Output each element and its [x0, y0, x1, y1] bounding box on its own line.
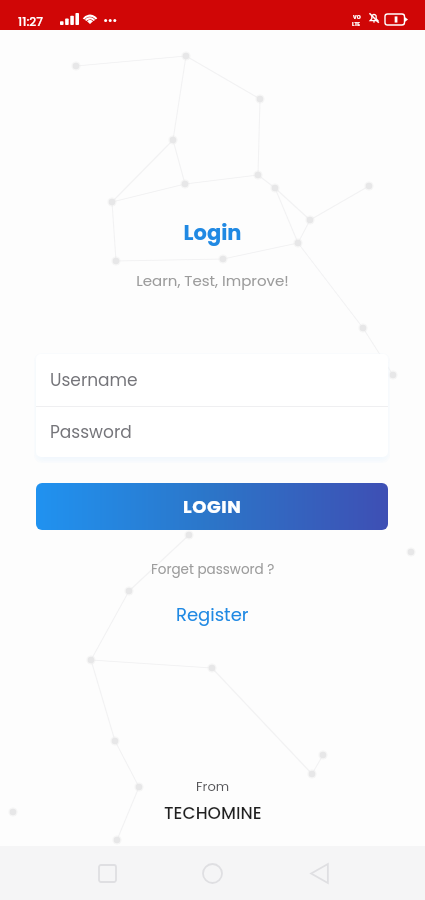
- button[interactable]: LOGIN: [36, 483, 388, 530]
- button[interactable]: Back: [295, 846, 344, 900]
- staticText: LOGIN: [183, 494, 242, 519]
- staticText: Learn, Test, Improve!: [136, 270, 289, 291]
- staticText: VO: [353, 14, 361, 21]
- staticText: 11:27: [18, 13, 43, 30]
- button[interactable]: Username: [36, 354, 388, 406]
- staticText: Login: [183, 218, 242, 247]
- staticText: Password: [50, 420, 132, 444]
- staticText: TECHOMINE: [164, 801, 262, 825]
- button[interactable]: Register: [0, 602, 425, 632]
- button[interactable]: Recent apps: [83, 846, 132, 900]
- staticText: LTE: [352, 21, 361, 28]
- button[interactable]: Password: [36, 407, 388, 457]
- staticText: Register: [176, 602, 249, 627]
- staticText: Username: [50, 368, 138, 392]
- button[interactable]: Home: [188, 846, 237, 900]
- staticText: Forget password ?: [151, 560, 275, 579]
- staticText: From: [196, 777, 230, 795]
- button[interactable]: Forget password ?: [0, 560, 425, 584]
